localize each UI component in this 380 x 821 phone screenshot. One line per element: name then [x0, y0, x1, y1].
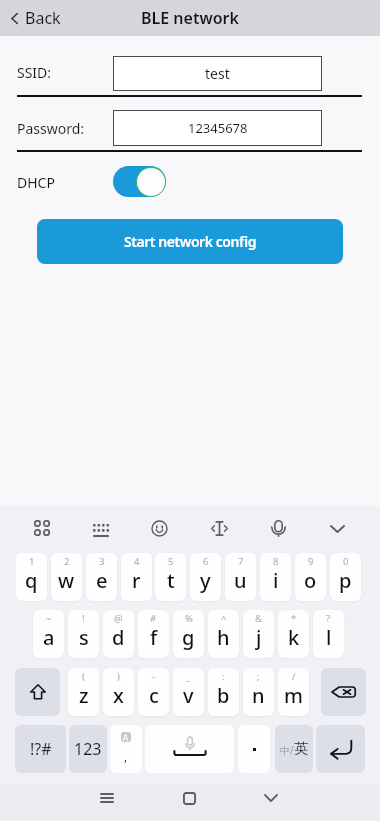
button[interactable]: 1	[16, 553, 47, 601]
button[interactable]: Start network config	[37, 219, 343, 264]
button[interactable]: @	[103, 610, 134, 658]
button[interactable]: ^	[208, 610, 239, 658]
button[interactable]: Shift	[15, 668, 60, 716]
staticText: 6	[203, 555, 209, 568]
button[interactable]: 9	[295, 553, 326, 601]
staticText: u	[234, 567, 247, 594]
button[interactable]: 5	[155, 553, 186, 601]
button[interactable]: Hide keyboard	[320, 512, 354, 546]
button[interactable]: test	[113, 56, 322, 91]
staticText: q	[25, 567, 38, 594]
staticText: 8	[273, 555, 279, 568]
staticText: A	[123, 732, 129, 742]
staticText: 9	[308, 555, 314, 568]
button[interactable]: 12345678	[113, 110, 322, 146]
button[interactable]: Sticker	[142, 511, 176, 545]
staticText: o	[304, 567, 317, 594]
button[interactable]: Emoji grid	[25, 511, 59, 545]
button[interactable]: Space	[145, 725, 234, 773]
staticText: s	[79, 624, 89, 651]
staticText: d	[112, 624, 125, 651]
staticText: v	[183, 682, 194, 709]
staticText: ^	[221, 612, 227, 625]
button[interactable]: -	[138, 668, 169, 716]
staticText: 7	[238, 555, 244, 568]
staticText: :	[222, 670, 225, 683]
staticText: 4	[134, 555, 140, 568]
button[interactable]: 4	[121, 553, 152, 601]
button[interactable]: &	[243, 610, 274, 658]
staticText: DHCP	[17, 173, 55, 192]
button[interactable]: 2	[51, 553, 82, 601]
button[interactable]: #	[138, 610, 169, 658]
staticText: test	[205, 64, 230, 83]
button[interactable]: *	[278, 610, 309, 658]
button[interactable]: 123	[69, 725, 107, 773]
staticText: 0	[343, 555, 349, 568]
staticText: p	[339, 567, 352, 594]
button[interactable]: _	[173, 668, 204, 716]
button[interactable]: ?	[313, 610, 344, 658]
button[interactable]: Back	[0, 3, 71, 33]
staticText: j	[256, 624, 262, 651]
staticText: SSID:	[17, 63, 52, 82]
staticText: !	[82, 612, 85, 625]
button[interactable]: Home	[171, 780, 207, 816]
button[interactable]: 中/	[275, 725, 313, 773]
button[interactable]	[238, 725, 270, 773]
button[interactable]: 6	[190, 553, 221, 601]
staticText: f	[150, 624, 158, 651]
staticText: h	[217, 624, 230, 651]
staticText: x	[113, 682, 124, 709]
staticText: i	[273, 567, 279, 594]
button[interactable]: %	[173, 610, 204, 658]
staticText: ?	[326, 612, 331, 625]
staticText: z	[79, 682, 89, 709]
button[interactable]: 3	[86, 553, 117, 601]
button[interactable]: !?#	[15, 725, 66, 773]
button[interactable]: 7	[225, 553, 256, 601]
button[interactable]: ~	[33, 610, 64, 658]
staticText: 中/	[280, 743, 294, 757]
staticText: BLE network	[141, 7, 239, 29]
staticText: !?#	[30, 738, 52, 760]
button[interactable]: )	[103, 668, 134, 716]
staticText: l	[326, 624, 332, 651]
staticText: %	[185, 612, 193, 625]
staticText: m	[284, 682, 303, 709]
button[interactable]: Back	[253, 780, 289, 816]
button[interactable]: Enter	[316, 725, 365, 773]
staticText: 英	[294, 740, 308, 758]
staticText: _	[186, 670, 191, 683]
button[interactable]: 0	[330, 553, 361, 601]
staticText: #	[150, 612, 157, 625]
button[interactable]: A	[110, 725, 142, 773]
button[interactable]: 8	[260, 553, 291, 601]
staticText: n	[252, 682, 265, 709]
button[interactable]: :	[208, 668, 239, 716]
staticText: ,	[124, 748, 128, 764]
button[interactable]: Voice input	[261, 511, 295, 545]
staticText: (	[82, 670, 85, 683]
button[interactable]: Backspace	[321, 668, 366, 716]
staticText: *	[291, 612, 297, 625]
button[interactable]: (	[68, 668, 99, 716]
staticText: 123	[74, 738, 102, 760]
staticText: b	[217, 682, 230, 709]
staticText: y	[200, 567, 211, 594]
staticText: g	[182, 624, 195, 651]
button[interactable]: ;	[243, 668, 274, 716]
button[interactable]: Recents	[89, 780, 125, 816]
staticText: -	[152, 670, 156, 683]
button[interactable]: Text cursor	[202, 511, 236, 545]
button[interactable]: Keyboard layout	[84, 511, 118, 545]
button[interactable]	[113, 166, 166, 197]
staticText: k	[288, 624, 300, 651]
staticText: e	[96, 567, 108, 594]
staticText: 12345678	[188, 119, 248, 137]
button[interactable]: !	[68, 610, 99, 658]
button[interactable]: /	[278, 668, 309, 716]
staticText: @	[114, 612, 123, 625]
staticText: &	[255, 612, 262, 625]
staticText: )	[117, 670, 120, 683]
